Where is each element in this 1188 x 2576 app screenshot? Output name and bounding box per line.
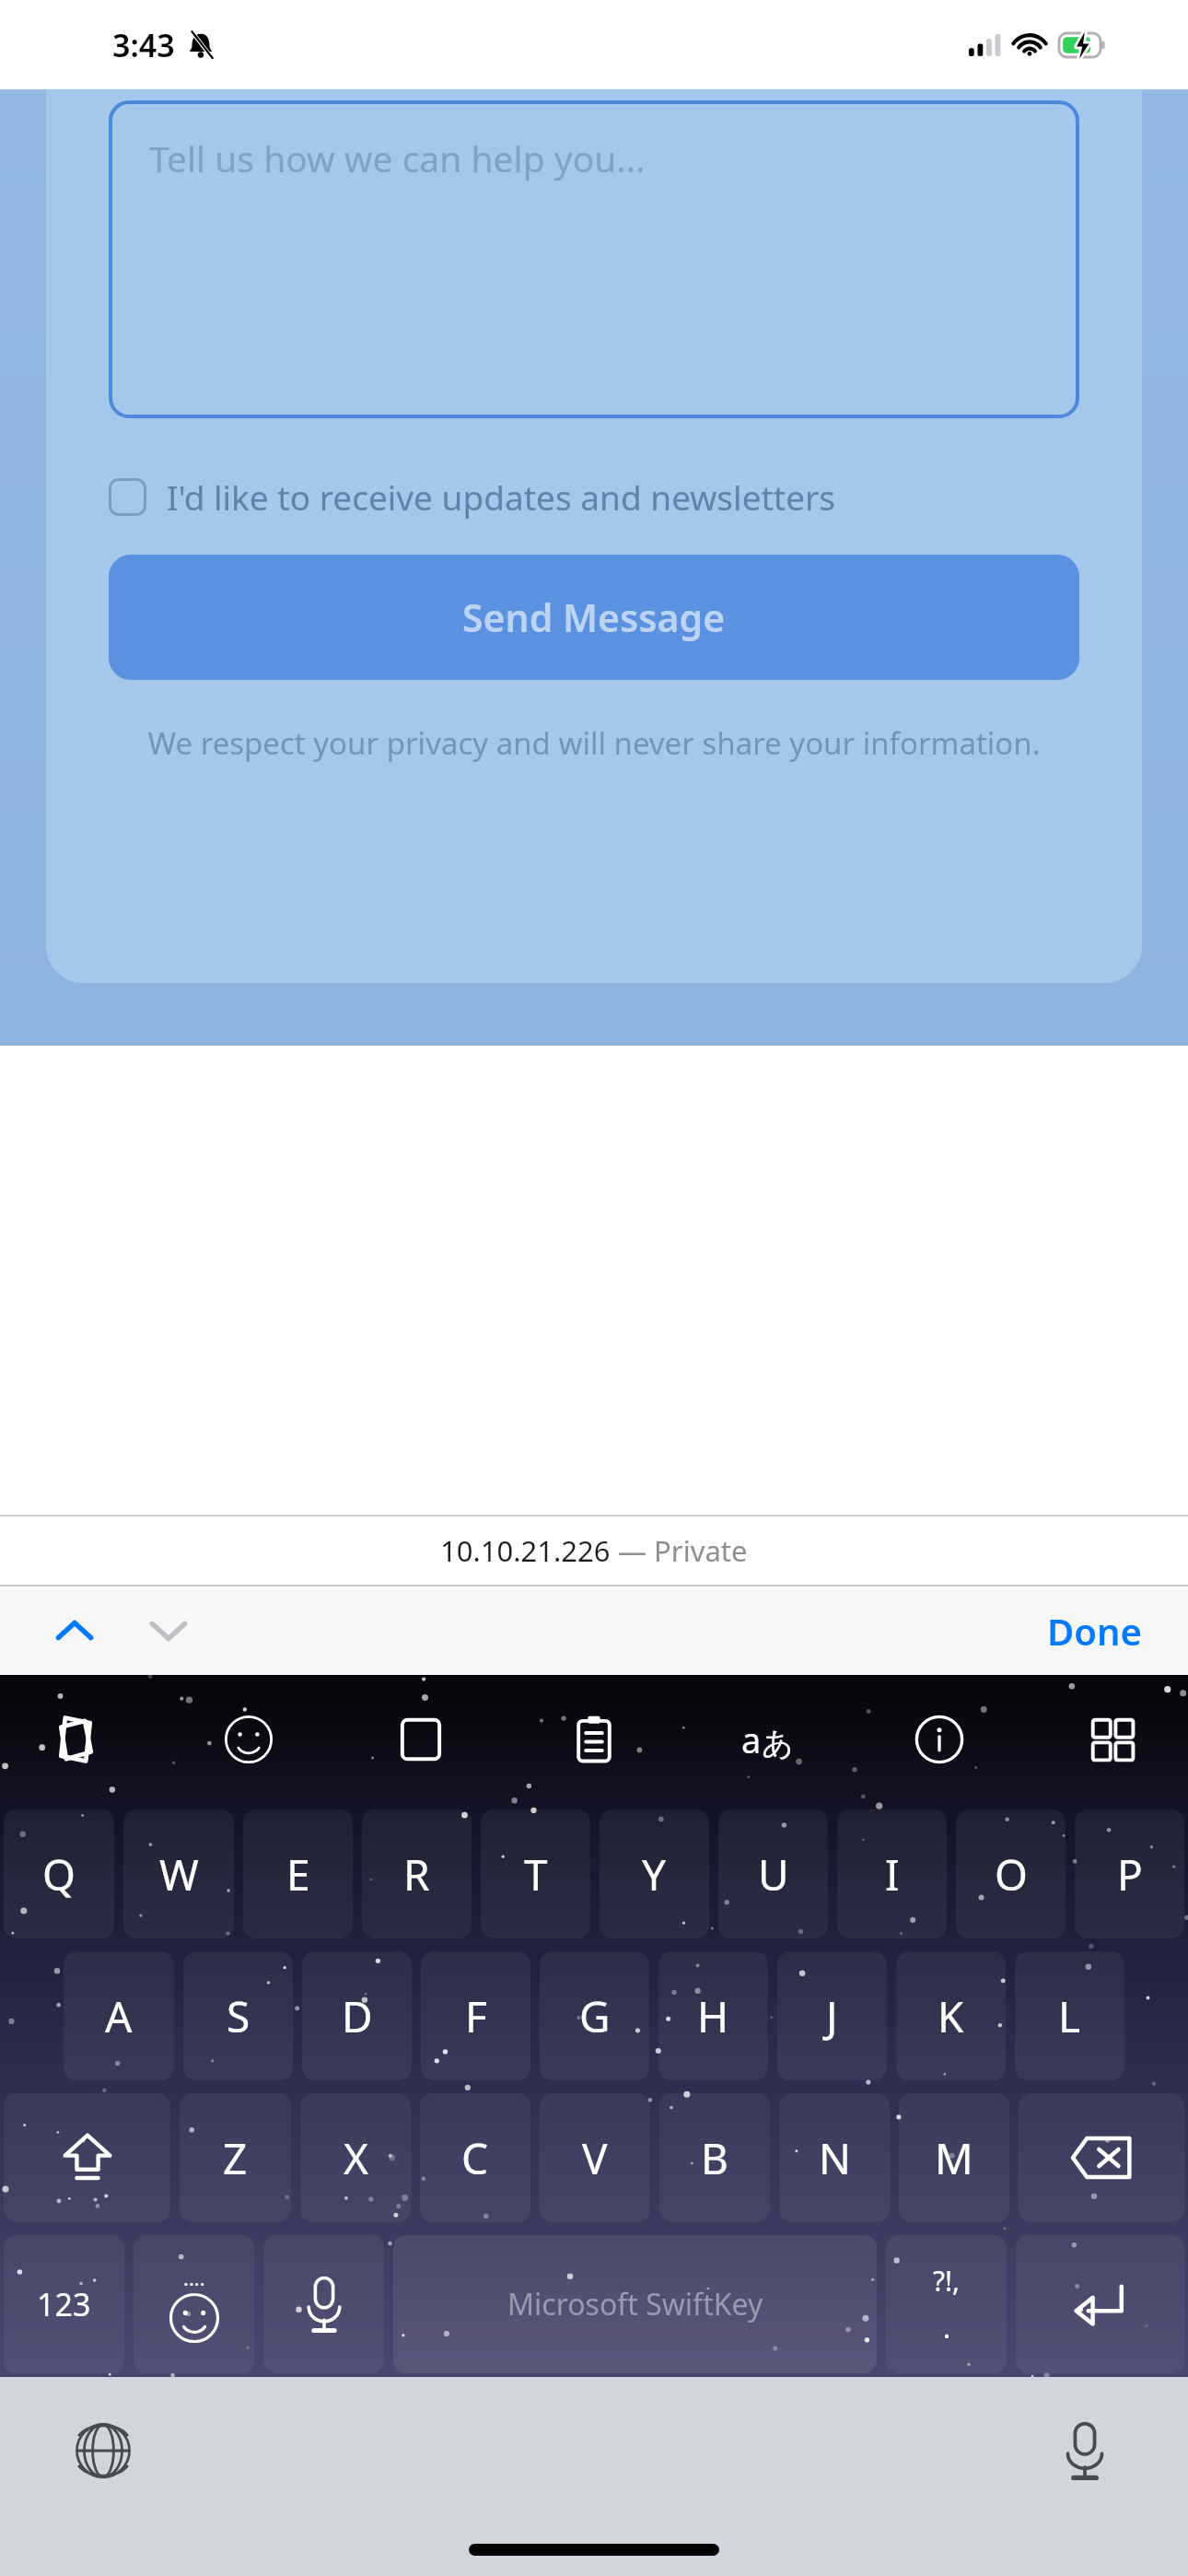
button[interactable]: F (421, 1951, 530, 2080)
button[interactable]: Z (180, 2093, 291, 2222)
button[interactable]: Emoji (134, 2235, 254, 2373)
button[interactable]: Next field (138, 1600, 199, 1661)
button[interactable]: D (302, 1951, 412, 2080)
button[interactable]: P (1075, 1809, 1184, 1938)
button[interactable]: U (718, 1809, 828, 1938)
staticText: G (579, 1987, 611, 2045)
button[interactable]: Dictation (1048, 2414, 1122, 2488)
button[interactable]: Done (1047, 1606, 1142, 1656)
button[interactable]: R (362, 1809, 472, 1938)
staticText: L (1058, 1987, 1081, 2045)
button[interactable]: Enter (1016, 2235, 1184, 2373)
button[interactable]: Voice input (263, 2235, 384, 2373)
staticText: S (227, 1987, 250, 2045)
button[interactable]: K (896, 1951, 1006, 2080)
staticText: 123 (37, 2283, 91, 2325)
button[interactable]: Tell us how we can help you... (109, 100, 1079, 418)
staticText: — Private (611, 1531, 748, 1570)
staticText: O (995, 1845, 1028, 1903)
staticText: Tell us how we can help you... (149, 134, 646, 182)
button[interactable]: Backspace (1019, 2093, 1184, 2222)
staticText: B (701, 2129, 728, 2187)
button[interactable]: I'd like to receive updates and newslett… (109, 474, 1079, 520)
staticText: I (885, 1845, 900, 1903)
button[interactable]: S (183, 1951, 293, 2080)
staticText: K (938, 1987, 964, 2045)
button[interactable]: H (658, 1951, 768, 2080)
staticText: C (461, 2129, 489, 2187)
button[interactable]: E (243, 1809, 353, 1938)
button[interactable]: I (837, 1809, 947, 1938)
button[interactable]: W (123, 1809, 234, 1938)
staticText: a (741, 1715, 762, 1763)
staticText: H (697, 1987, 729, 2045)
button[interactable]: Info (901, 1701, 978, 1778)
button[interactable]: Send Message (109, 555, 1079, 680)
staticText: N (819, 2129, 851, 2187)
staticText: U (758, 1845, 789, 1903)
button[interactable]: Clipboard (555, 1701, 633, 1778)
button[interactable]: L (1015, 1951, 1124, 2080)
staticText: D (342, 1987, 373, 2045)
staticText: ?!, (933, 2262, 961, 2300)
button[interactable]: Emoji (210, 1701, 287, 1778)
button[interactable]: Shift (4, 2093, 170, 2222)
button[interactable]: 10.10.21.226 (0, 1516, 1188, 1585)
button[interactable]: Space (393, 2235, 877, 2373)
button[interactable]: Y (600, 1809, 709, 1938)
button[interactable]: B (659, 2093, 770, 2222)
button[interactable]: GIF (382, 1701, 460, 1778)
staticText: .... (183, 2264, 205, 2291)
button[interactable]: 123 (4, 2235, 124, 2373)
button[interactable]: SwiftKey menu (37, 1701, 114, 1778)
button[interactable]: C (420, 2093, 530, 2222)
staticText: X (344, 2129, 368, 2187)
button[interactable]: M (899, 2093, 1009, 2222)
staticText: E (286, 1845, 310, 1903)
staticText: M (935, 2129, 973, 2187)
staticText: W (159, 1845, 199, 1903)
button[interactable]: Translator (728, 1701, 806, 1778)
staticText: F (465, 1987, 487, 2045)
staticText: A (105, 1987, 133, 2045)
button[interactable]: J (777, 1951, 887, 2080)
staticText: T (524, 1845, 548, 1903)
button[interactable]: V (540, 2093, 650, 2222)
staticText: あ (762, 1724, 794, 1763)
staticText: Microsoft SwiftKey (507, 2284, 763, 2324)
staticText: I'd like to receive updates and newslett… (167, 474, 836, 520)
staticText: . (943, 2309, 951, 2347)
staticText: Send Message (462, 591, 726, 643)
button[interactable]: Change keyboard (66, 2414, 140, 2488)
staticText: We respect your privacy and will never s… (111, 722, 1077, 764)
staticText: R (403, 1845, 430, 1903)
button[interactable]: X (300, 2093, 411, 2222)
staticText: Y (642, 1845, 667, 1903)
button[interactable]: A (64, 1951, 174, 2080)
button[interactable]: G (540, 1951, 649, 2080)
staticText: 3:43 (112, 24, 175, 66)
button[interactable]: Q (4, 1809, 114, 1938)
button[interactable]: O (956, 1809, 1066, 1938)
staticText: J (826, 1987, 838, 2045)
staticText: Q (42, 1845, 76, 1903)
staticText: V (582, 2129, 608, 2187)
button[interactable]: N (779, 2093, 890, 2222)
staticText: P (1117, 1845, 1143, 1903)
staticText: Z (223, 2129, 248, 2187)
staticText: 10.10.21.226 (440, 1531, 611, 1570)
button[interactable]: T (481, 1809, 590, 1938)
button[interactable]: More (1074, 1701, 1151, 1778)
button[interactable]: ?!, (886, 2235, 1007, 2373)
staticText: Done (1047, 1606, 1142, 1656)
button[interactable]: Previous field (44, 1600, 105, 1661)
